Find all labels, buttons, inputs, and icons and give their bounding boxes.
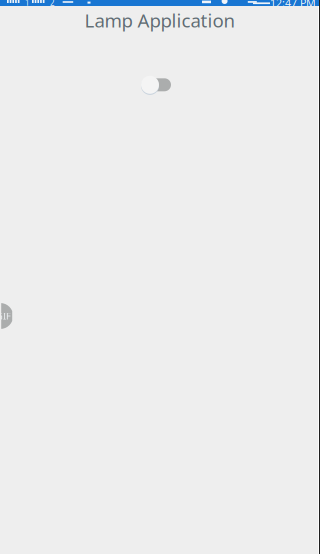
button[interactable]: Lamp power switch <box>141 75 171 95</box>
button[interactable]: GIF <box>1 303 12 329</box>
staticText: Lamp Application <box>84 8 235 33</box>
staticText: 2 <box>50 0 55 8</box>
staticText: 1 <box>25 0 30 8</box>
staticText: 12:47 PM <box>270 0 316 10</box>
staticText: GIF <box>0 310 11 322</box>
